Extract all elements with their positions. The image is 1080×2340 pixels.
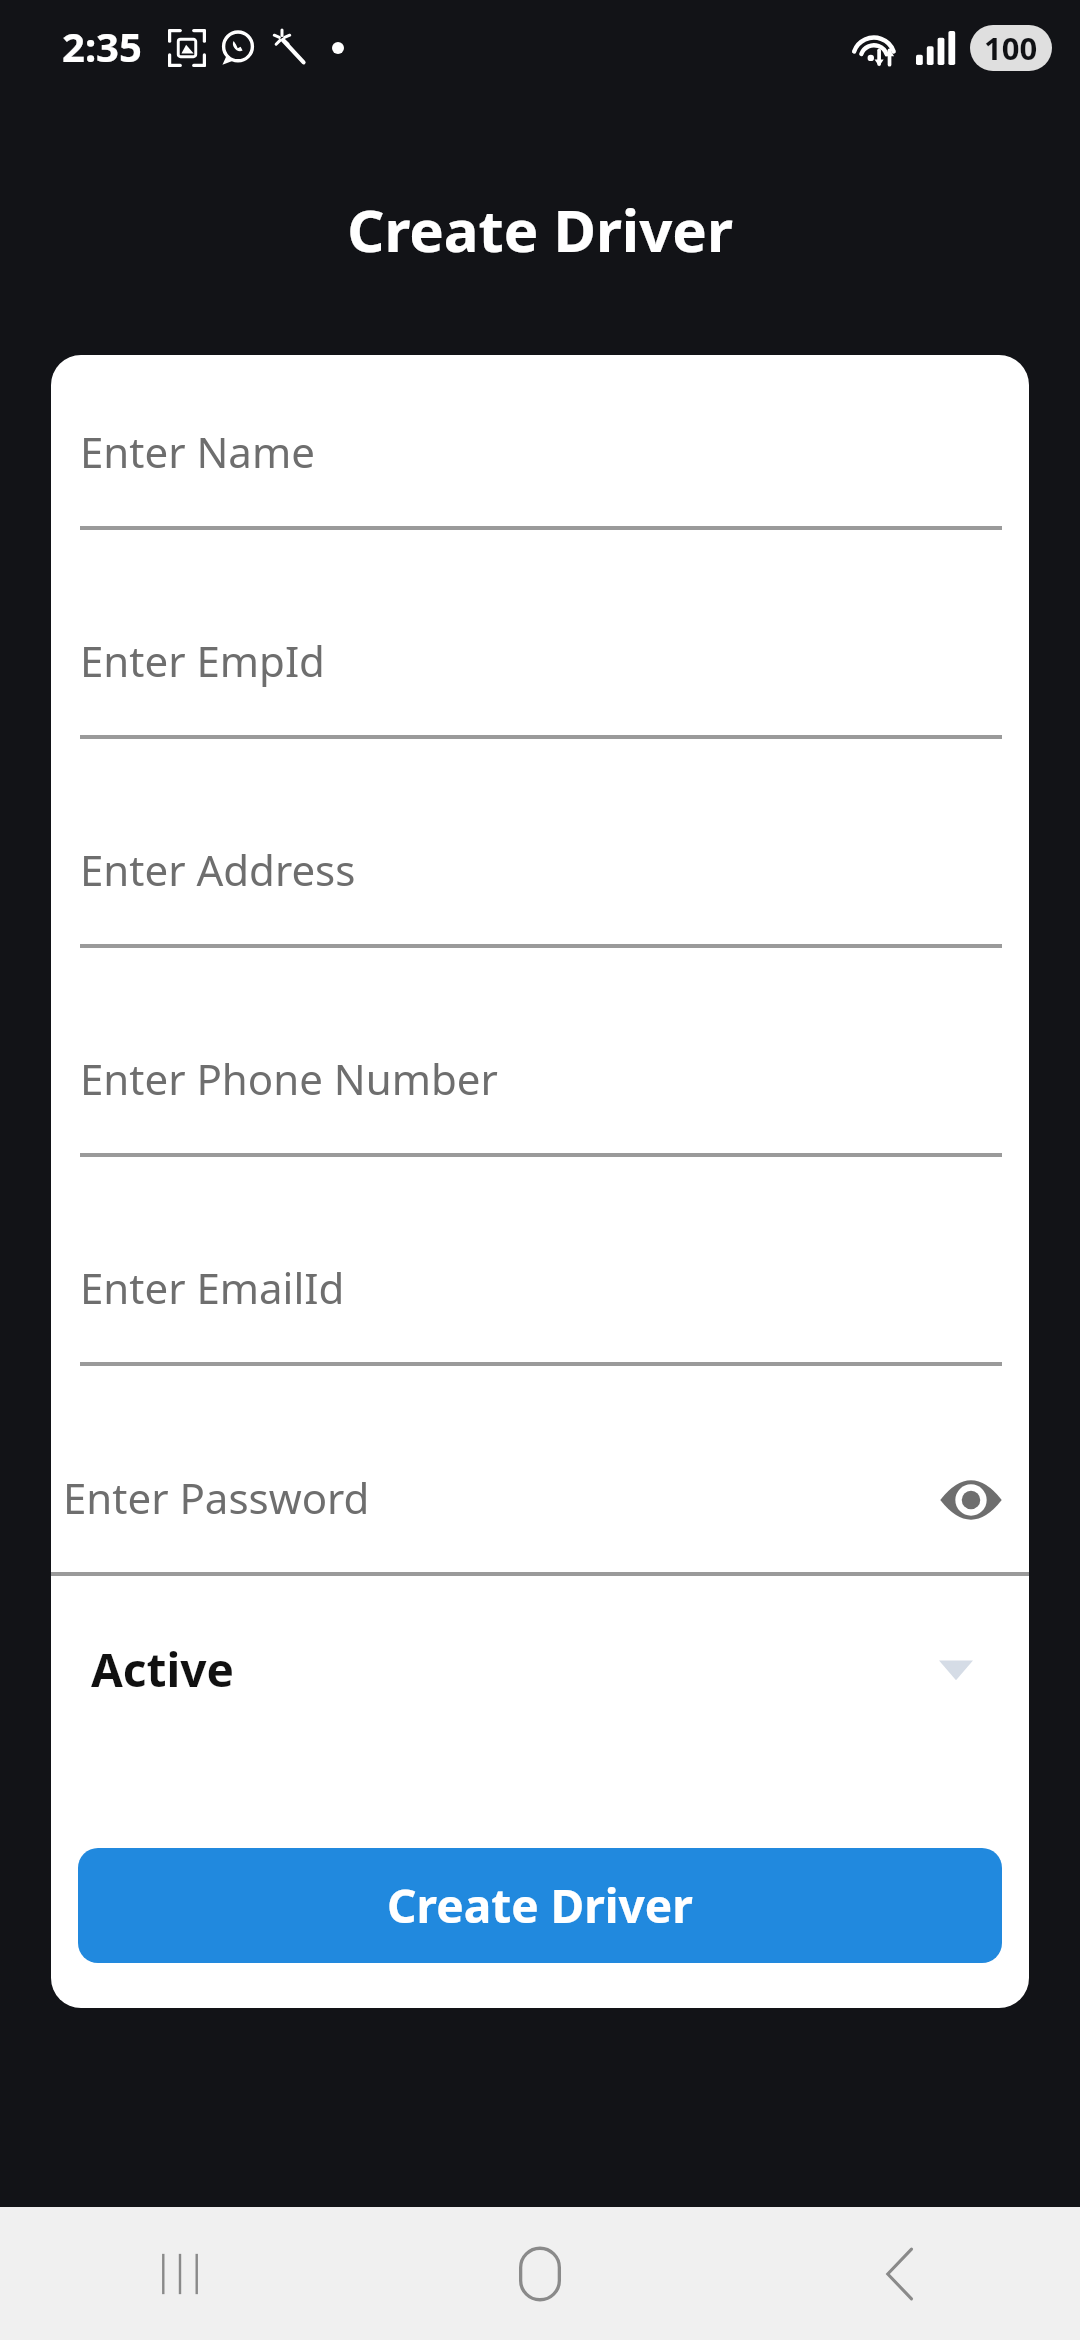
other: Open status dropdown [939, 1653, 973, 1687]
staticText: Enter Phone Number [80, 1050, 498, 1107]
button[interactable]: Show password [925, 1454, 1017, 1546]
button[interactable]: Enter EmailId [80, 1191, 1002, 1400]
button[interactable]: Enter Address [80, 773, 1002, 982]
button[interactable]: Recents [0, 2207, 360, 2340]
staticText: 100 [984, 27, 1038, 69]
staticText: Enter Name [80, 423, 315, 480]
staticText: Enter EmpId [80, 632, 325, 689]
button[interactable]: Enter Phone Number [80, 982, 1002, 1191]
staticText: Enter Password [63, 1469, 925, 1526]
button[interactable]: Create Driver [78, 1848, 1002, 1963]
button[interactable]: Enter Password [63, 1401, 1017, 1610]
button[interactable]: Active [91, 1572, 973, 1767]
staticText: Create Driver [0, 190, 1080, 269]
staticText: Enter EmailId [80, 1259, 345, 1316]
staticText: Create Driver [387, 1874, 693, 1937]
button[interactable]: Back [720, 2207, 1080, 2340]
staticText: 2:35 [62, 19, 142, 73]
staticText: Active [91, 1638, 939, 1701]
button[interactable]: Enter EmpId [80, 564, 1002, 773]
button[interactable]: Home [360, 2207, 720, 2340]
button[interactable]: Enter Name [80, 355, 1002, 564]
staticText: Enter Address [80, 841, 356, 898]
